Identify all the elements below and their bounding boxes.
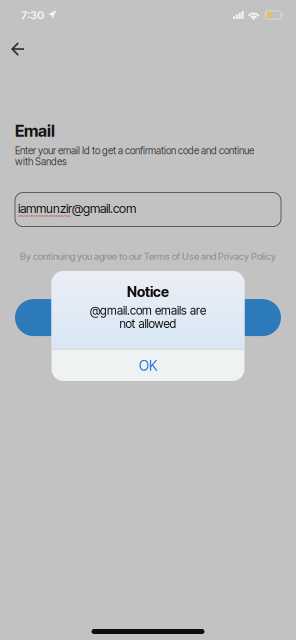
button[interactable] [15,299,281,336]
staticText: with Sandes [15,156,67,167]
staticText: By continuing you agree to our Terms of … [20,251,276,262]
button[interactable]: OK [51,350,244,382]
button[interactable]: Back [0,32,45,62]
staticText: Notice [127,283,169,300]
staticText [146,309,149,326]
staticText: @gmail.com emails are [90,303,206,318]
staticText: OK [139,357,157,374]
staticText: 7:30 [21,8,44,22]
staticText: iammunzir@gmail.com [18,201,136,216]
staticText: not allowed [119,317,176,331]
staticText: Enter your email Id to get a confirmatio… [15,145,254,157]
staticText: Email [15,121,55,141]
